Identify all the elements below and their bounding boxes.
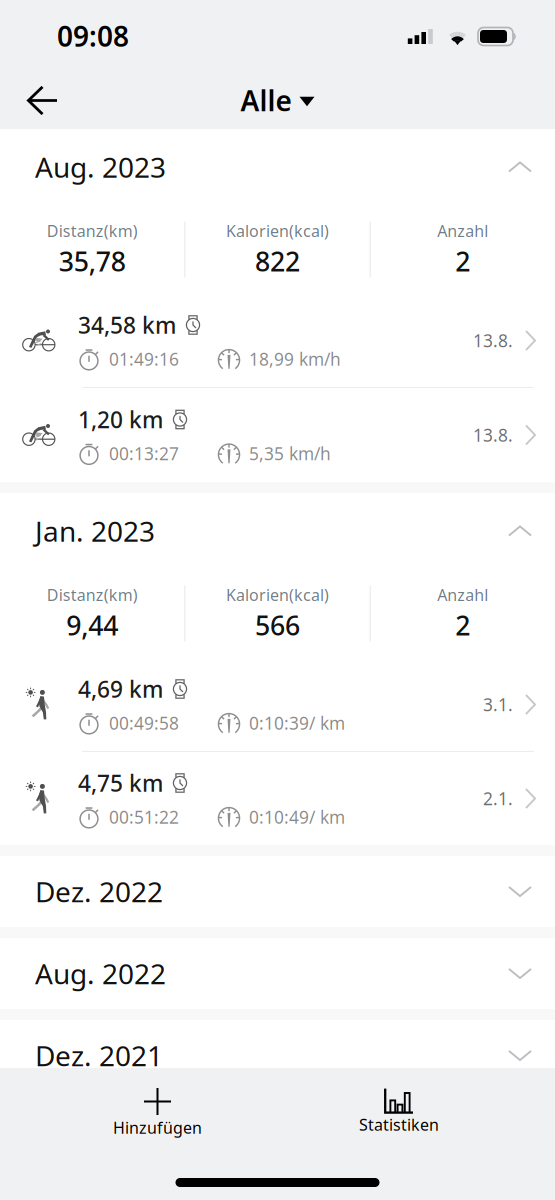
staticText: 2	[455, 607, 470, 643]
staticText: 13.8.	[473, 423, 513, 446]
staticText: Alle	[240, 82, 291, 119]
staticText: Jan. 2023	[35, 512, 155, 550]
staticText: Kalorien(kcal)	[226, 584, 329, 605]
staticText: Distanz(km)	[47, 220, 138, 241]
staticText: Anzahl	[437, 584, 488, 605]
staticText: 3.1.	[483, 693, 513, 716]
staticText: 0:10:49/ km	[249, 805, 345, 828]
staticText: Dez. 2021	[35, 1037, 163, 1074]
button[interactable]: 4,69 km	[0, 658, 555, 751]
button[interactable]: 34,58 km	[0, 294, 555, 387]
staticText: 9,44	[66, 607, 118, 643]
button[interactable]: Back	[0, 74, 80, 126]
staticText: 13.8.	[473, 329, 513, 352]
button[interactable]: Aug. 2023	[0, 129, 555, 205]
staticText: 2	[455, 243, 470, 279]
button[interactable]: Hinzufügen	[0, 1068, 245, 1143]
staticText: 09:08	[57, 17, 129, 55]
staticText: 2.1.	[483, 787, 513, 810]
button[interactable]: Statistiken	[245, 1071, 482, 1140]
button[interactable]: Aug. 2022	[0, 938, 555, 1009]
button[interactable]: Dez. 2021	[0, 1020, 555, 1091]
staticText: Distanz(km)	[47, 584, 138, 605]
staticText: 00:49:58	[109, 711, 179, 734]
staticText: 0:10:39/ km	[249, 711, 345, 734]
staticText: 00:51:22	[109, 805, 179, 828]
staticText: Kalorien(kcal)	[226, 220, 329, 241]
staticText: Hinzufügen	[113, 1117, 202, 1138]
staticText: 1,20 km	[78, 404, 163, 434]
button[interactable]: Jan. 2023	[0, 493, 555, 569]
staticText: 34,58 km	[78, 310, 176, 340]
staticText: Statistiken	[359, 1114, 439, 1135]
staticText: 00:13:27	[109, 442, 179, 465]
staticText: Aug. 2023	[35, 148, 166, 186]
staticText: 4,69 km	[78, 674, 163, 704]
staticText: 18,99 km/h	[249, 347, 341, 370]
staticText: Dez. 2022	[35, 873, 163, 910]
staticText: Aug. 2022	[35, 955, 166, 992]
button[interactable]: Dez. 2022	[0, 856, 555, 927]
staticText: Anzahl	[437, 220, 488, 241]
button[interactable]: Alle	[226, 70, 328, 131]
staticText: 5,35 km/h	[249, 442, 331, 465]
staticText: 4,75 km	[78, 768, 163, 798]
button[interactable]: 4,75 km	[0, 752, 555, 845]
staticText: 01:49:16	[109, 347, 179, 370]
staticText: 822	[255, 243, 300, 279]
button[interactable]: 1,20 km	[0, 388, 555, 482]
staticText: 566	[255, 607, 300, 643]
staticText: 35,78	[59, 243, 126, 279]
